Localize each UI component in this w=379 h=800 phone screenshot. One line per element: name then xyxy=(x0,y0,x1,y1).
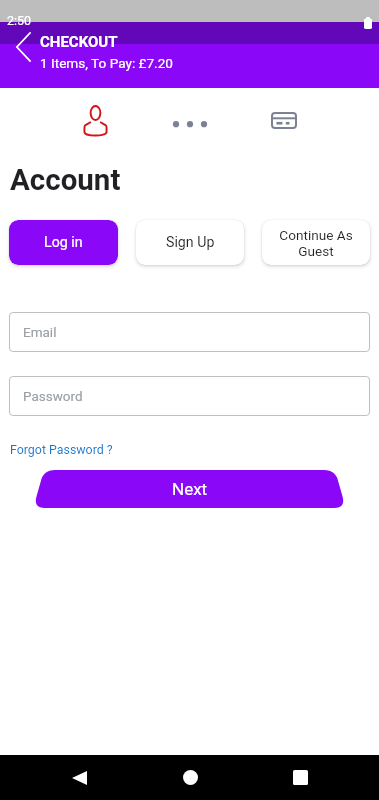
button[interactable]: Sign Up xyxy=(136,220,244,265)
staticText: Password xyxy=(23,388,83,404)
staticText: Next xyxy=(172,479,208,499)
button[interactable]: More xyxy=(143,99,237,143)
button[interactable]: Home xyxy=(135,755,245,800)
button[interactable]: Log in xyxy=(9,220,118,265)
staticText: Account xyxy=(10,163,121,198)
button[interactable]: Back xyxy=(3,27,43,67)
staticText: 2:50 xyxy=(7,13,32,28)
button[interactable]: Back xyxy=(24,755,135,800)
staticText: Continue As Guest xyxy=(262,227,370,259)
button[interactable]: Recent apps xyxy=(245,755,355,800)
button[interactable]: Account xyxy=(48,99,143,143)
button[interactable]: Payment xyxy=(237,99,331,143)
staticText: Email xyxy=(23,324,57,340)
button[interactable]: Continue As Guest xyxy=(262,220,370,265)
button[interactable]: Next xyxy=(33,470,346,508)
button[interactable]: Forgot Password ? xyxy=(10,442,113,457)
staticText: Sign Up xyxy=(166,234,215,251)
staticText: Log in xyxy=(44,234,83,251)
staticText: 1 Items, To Pay: £7.20 xyxy=(40,55,173,71)
staticText: CHECKOUT xyxy=(40,33,118,51)
button[interactable]: Email xyxy=(9,312,370,352)
button[interactable]: Password xyxy=(9,376,370,416)
